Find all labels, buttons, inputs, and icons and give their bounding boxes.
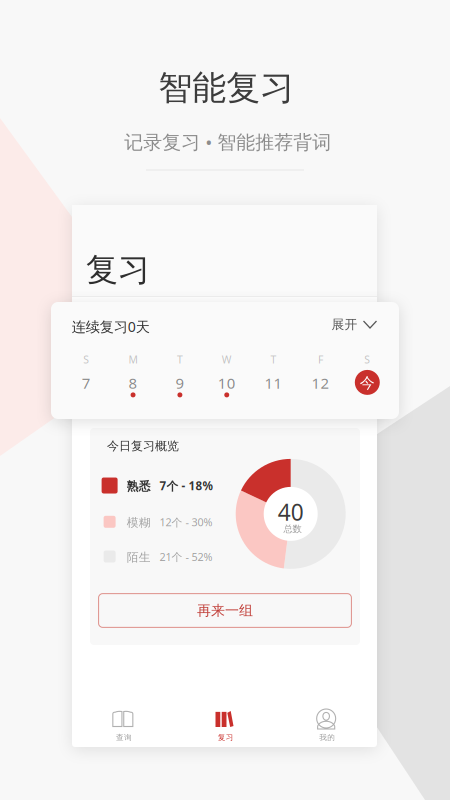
staticText: 再来一组 <box>197 602 253 619</box>
staticText: W <box>222 352 232 366</box>
staticText: 熟悉 <box>127 479 151 494</box>
staticText: 展开 <box>331 316 357 332</box>
staticText: 查询 <box>116 733 132 742</box>
staticText: 连续复习0天 <box>72 317 150 336</box>
staticText: T <box>177 352 183 366</box>
button[interactable]: 我的 <box>275 691 377 751</box>
staticText: M <box>129 352 138 366</box>
staticText: 记录复习 • 智能推荐背词 <box>124 129 331 155</box>
staticText: 21个 - 52% <box>159 549 212 564</box>
staticText: 12个 - 30% <box>159 515 212 529</box>
staticText: 总数 <box>283 523 301 535</box>
staticText: 智能复习 <box>158 67 294 109</box>
staticText: 陌生 <box>127 550 151 565</box>
staticText: 今日复习概览 <box>107 438 179 453</box>
staticText: 复习 <box>86 250 150 290</box>
staticText: S <box>83 352 89 366</box>
staticText: 8 <box>129 373 138 393</box>
staticText: F <box>318 352 323 366</box>
button[interactable]: 复习 <box>174 691 275 751</box>
staticText: 11 <box>265 373 283 393</box>
staticText: S <box>364 352 370 366</box>
button[interactable]: 展开 <box>325 310 383 338</box>
button[interactable]: 再来一组 <box>99 594 351 627</box>
staticText: 模糊 <box>127 515 151 530</box>
staticText: 7 <box>82 373 91 393</box>
button[interactable]: 查询 <box>72 691 174 751</box>
staticText: 7个 - 18% <box>159 478 212 494</box>
staticText: 10 <box>218 373 236 393</box>
staticText: 今 <box>360 374 375 392</box>
staticText: 复习 <box>218 733 234 742</box>
staticText: 我的 <box>319 733 335 742</box>
staticText: 40 <box>278 496 304 527</box>
staticText: 9 <box>175 373 184 393</box>
staticText: 12 <box>311 373 329 393</box>
staticText: T <box>271 352 277 366</box>
